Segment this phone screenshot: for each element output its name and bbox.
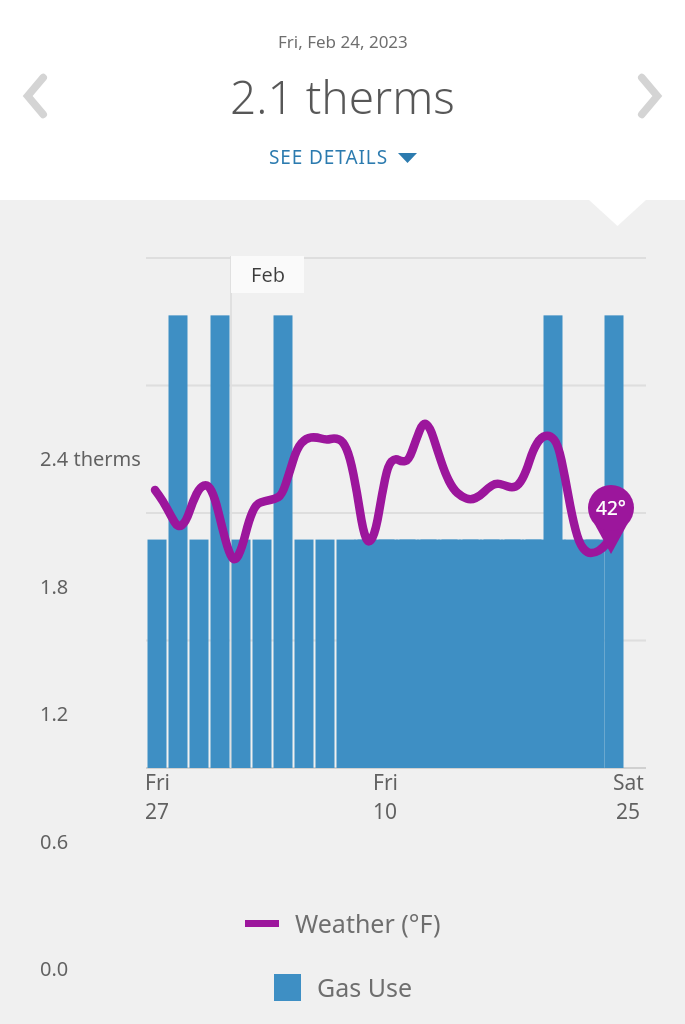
staticText: Gas Use: [317, 970, 413, 1004]
staticText: Fri: [145, 768, 170, 797]
staticText: Sat: [613, 768, 644, 797]
staticText: 2.4 therms: [40, 445, 141, 472]
button[interactable]: SEE DETAILS: [259, 140, 427, 174]
button[interactable]: Next day: [615, 63, 681, 129]
staticText: 0.0: [40, 955, 69, 982]
button[interactable]: Previous day: [4, 63, 70, 129]
staticText: 27: [145, 797, 170, 826]
staticText: Weather (°F): [295, 906, 441, 940]
button[interactable]: Weather (°F): [241, 902, 445, 944]
staticText: Feb: [251, 261, 285, 288]
staticText: Fri: [373, 768, 398, 797]
staticText: 1.8: [40, 573, 69, 600]
button[interactable]: Gas Use: [270, 966, 417, 1008]
staticText: 10: [373, 797, 398, 826]
staticText: SEE DETAILS: [269, 144, 389, 170]
staticText: Fri, Feb 24, 2023: [278, 30, 408, 53]
staticText: 25: [616, 797, 641, 826]
staticText: 42°: [596, 495, 626, 521]
staticText: 0.6: [40, 828, 69, 855]
staticText: 1.2: [40, 700, 69, 727]
staticText: 2.1 therms: [230, 65, 455, 128]
